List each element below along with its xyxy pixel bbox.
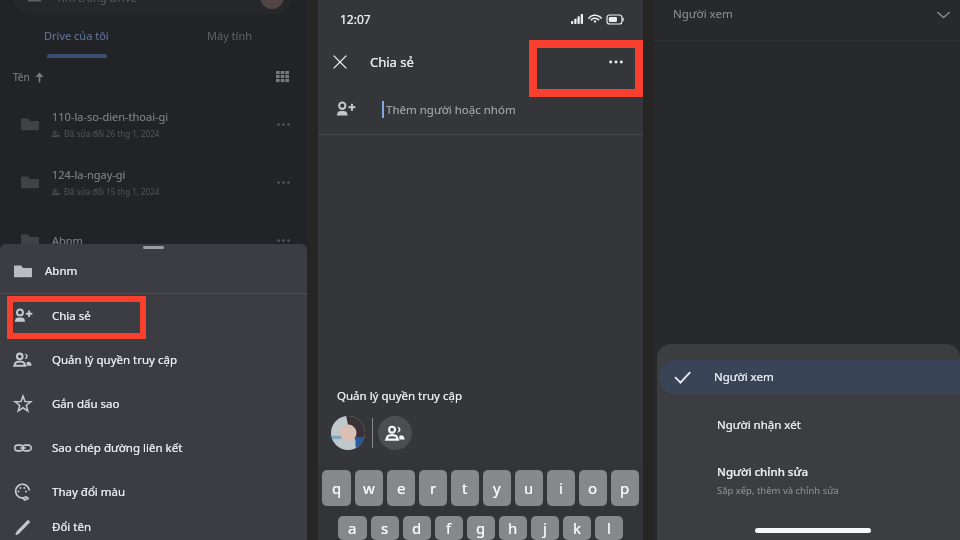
button[interactable]: p: [611, 470, 639, 506]
staticText: w: [363, 478, 375, 498]
staticText: Chia sẻ: [370, 53, 414, 71]
button[interactable]: l: [595, 516, 623, 540]
button[interactable]: Tìm trong Drive: [13, 0, 292, 14]
staticText: r: [430, 478, 437, 498]
button[interactable]: w: [355, 470, 383, 506]
button[interactable]: 110-la-so-dien-thoai-gi: [21, 95, 295, 153]
button[interactable]: i: [547, 470, 575, 506]
staticText: Abnm: [45, 263, 78, 279]
staticText: t: [462, 478, 468, 498]
staticText: Người nhận xét: [717, 417, 801, 433]
staticText: Tìm trong Drive: [56, 0, 137, 5]
staticText: Đã sửa đổi 15 thg 1, 2024: [64, 186, 160, 197]
staticText: y: [493, 478, 501, 498]
button[interactable]: 124-la-ngay-gi: [21, 153, 295, 211]
staticText: k: [573, 518, 582, 538]
button[interactable]: r: [419, 470, 447, 506]
button[interactable]: t: [451, 470, 479, 506]
button[interactable]: o: [579, 470, 607, 506]
button[interactable]: j: [531, 516, 559, 540]
button[interactable]: More options: [271, 170, 295, 194]
button[interactable]: Sao chép đường liên kết: [14, 426, 307, 470]
button[interactable]: More options: [604, 50, 628, 74]
button[interactable]: Người chỉnh sửa: [717, 464, 960, 497]
staticText: Quản lý quyền truy cập: [52, 352, 177, 368]
staticText: d: [412, 518, 422, 538]
button[interactable]: u: [515, 470, 543, 506]
staticText: s: [381, 518, 389, 538]
staticText: Người xem: [673, 6, 733, 22]
staticText: a: [348, 518, 357, 538]
button[interactable]: More options: [271, 228, 295, 252]
button[interactable]: g: [467, 516, 495, 540]
button[interactable]: Tên: [13, 70, 45, 84]
staticText: e: [397, 478, 406, 498]
staticText: Abnm: [52, 233, 83, 248]
staticText: u: [524, 478, 534, 498]
staticText: Người chỉnh sửa: [717, 464, 809, 480]
button[interactable]: Người nhận xét: [717, 410, 960, 440]
button[interactable]: f: [435, 516, 463, 540]
button[interactable]: Owner avatar: [331, 416, 365, 450]
staticText: Quản lý quyền truy cập: [337, 388, 462, 404]
staticText: Máy tính: [207, 28, 253, 43]
staticText: h: [508, 518, 518, 538]
staticText: Tên: [13, 70, 30, 84]
staticText: Thêm người hoặc nhóm: [386, 102, 516, 118]
staticText: Sắp xếp, thêm và chỉnh sửa: [717, 484, 839, 497]
button[interactable]: Người xem: [659, 360, 960, 394]
staticText: q: [332, 478, 342, 498]
button[interactable]: Close: [328, 50, 352, 74]
button[interactable]: y: [483, 470, 511, 506]
button[interactable]: q: [322, 470, 351, 506]
button[interactable]: Thay đổi màu: [14, 470, 307, 514]
button[interactable]: d: [403, 516, 431, 540]
staticText: i: [559, 478, 563, 498]
staticText: Drive của tôi: [44, 28, 109, 43]
staticText: 12:07: [340, 11, 371, 27]
button[interactable]: Máy tính: [153, 16, 307, 54]
button[interactable]: Drive của tôi: [0, 16, 153, 54]
staticText: Đã sửa đổi 26 thg 1, 2024: [64, 128, 160, 139]
button[interactable]: Grid view: [272, 66, 294, 88]
staticText: Sao chép đường liên kết: [52, 440, 183, 456]
staticText: 124-la-ngay-gi: [52, 167, 126, 182]
button[interactable]: a: [338, 516, 367, 540]
button[interactable]: h: [499, 516, 527, 540]
staticText: Thay đổi màu: [52, 484, 126, 500]
button[interactable]: Đổi tên: [14, 514, 307, 540]
staticText: j: [543, 518, 547, 538]
button[interactable]: Gắn dấu sao: [14, 382, 307, 426]
staticText: g: [476, 518, 486, 538]
button[interactable]: Người xem: [673, 0, 952, 28]
button[interactable]: s: [371, 516, 399, 540]
staticText: f: [446, 518, 452, 538]
button[interactable]: k: [563, 516, 591, 540]
staticText: l: [607, 518, 611, 538]
staticText: Chia sẻ: [52, 308, 91, 324]
button[interactable]: Abnm: [21, 211, 295, 269]
button[interactable]: Chia sẻ: [14, 294, 307, 338]
staticText: p: [620, 478, 630, 498]
staticText: Người xem: [714, 369, 774, 385]
staticText: o: [588, 478, 598, 498]
staticText: Đổi tên: [52, 519, 92, 535]
button[interactable]: Quản lý quyền truy cập: [14, 338, 307, 382]
button[interactable]: More options: [271, 112, 295, 136]
button[interactable]: Manage people: [378, 416, 412, 450]
staticText: 110-la-so-dien-thoai-gi: [52, 109, 169, 124]
staticText: Gắn dấu sao: [52, 396, 120, 412]
button[interactable]: e: [387, 470, 415, 506]
